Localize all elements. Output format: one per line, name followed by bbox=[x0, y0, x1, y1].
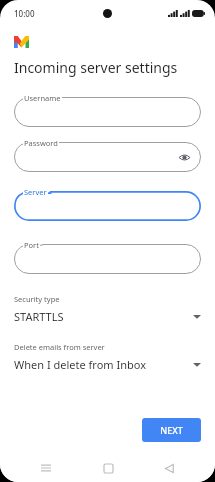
staticText: Security type bbox=[14, 294, 60, 304]
staticText: NEXT bbox=[160, 424, 183, 436]
button[interactable]: Security type bbox=[0, 292, 215, 326]
staticText: 10:00 bbox=[14, 8, 35, 19]
staticText: Server bbox=[24, 187, 47, 197]
staticText: STARTTLS bbox=[14, 309, 193, 324]
staticText: Delete emails from server bbox=[14, 342, 105, 352]
button[interactable]: Back bbox=[154, 454, 184, 482]
button[interactable]: Delete emails from server bbox=[0, 340, 215, 374]
staticText: Port bbox=[24, 240, 39, 250]
staticText: Incoming server settings bbox=[14, 58, 178, 77]
button[interactable]: Password bbox=[14, 142, 201, 172]
staticText: Username bbox=[24, 93, 61, 103]
button[interactable]: Recent apps bbox=[31, 454, 61, 482]
button[interactable]: Username bbox=[14, 97, 201, 127]
button[interactable]: Server bbox=[14, 191, 201, 221]
staticText: When I delete from Inbox bbox=[14, 357, 193, 372]
button[interactable]: Show password bbox=[176, 149, 192, 165]
button[interactable]: Home bbox=[93, 454, 123, 482]
staticText: Password bbox=[24, 138, 58, 148]
button[interactable]: NEXT bbox=[142, 418, 201, 442]
button[interactable]: Port bbox=[14, 244, 201, 274]
